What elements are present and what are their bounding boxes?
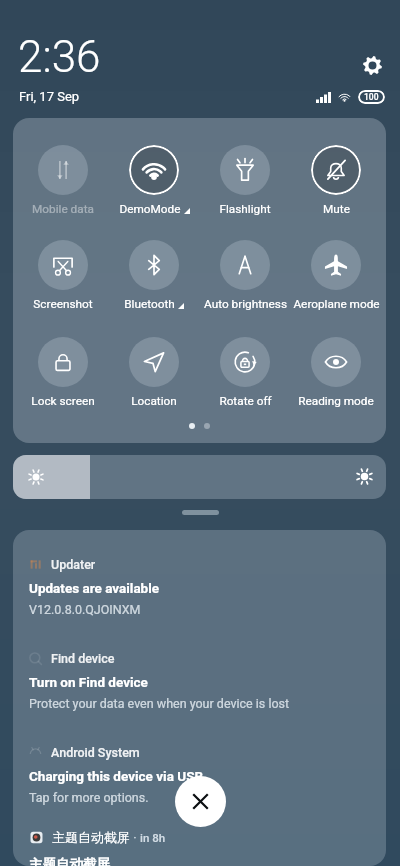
button[interactable]: Reading mode bbox=[291, 337, 381, 415]
staticText: Mobile data bbox=[32, 202, 94, 216]
staticText: Charging this device via USB bbox=[29, 768, 204, 784]
staticText: Updates are available bbox=[29, 580, 160, 596]
staticText: Aeroplane mode bbox=[293, 297, 380, 311]
staticText: Reading mode bbox=[298, 394, 374, 408]
button[interactable]: Brightness bbox=[13, 455, 386, 499]
button[interactable]: Mobile data bbox=[18, 145, 108, 223]
staticText: Auto brightness bbox=[204, 297, 287, 311]
button[interactable]: Updater bbox=[29, 556, 386, 636]
staticText: 100 bbox=[364, 92, 379, 102]
staticText: Mute bbox=[323, 202, 350, 216]
staticText: in 8h bbox=[140, 831, 166, 844]
staticText: 主题自动截屏 bbox=[52, 829, 130, 845]
staticText: · bbox=[130, 830, 140, 845]
button[interactable]: Bluetooth bbox=[109, 240, 199, 318]
staticText: Location bbox=[131, 394, 177, 408]
staticText: Screenshot bbox=[33, 297, 93, 311]
button[interactable]: Lock screen bbox=[18, 337, 108, 415]
button[interactable]: 主题自动截屏 bbox=[30, 829, 386, 845]
button[interactable]: Aeroplane mode bbox=[291, 240, 381, 318]
staticText: Rotate off bbox=[219, 394, 272, 408]
staticText: Fri, 17 Sep bbox=[19, 89, 80, 104]
button[interactable]: Find device bbox=[29, 650, 386, 730]
staticText: Android System bbox=[51, 745, 140, 760]
button[interactable]: Screenshot bbox=[18, 240, 108, 318]
staticText: 主题自动截屏 bbox=[29, 856, 110, 866]
staticText: Updater bbox=[51, 557, 96, 572]
button[interactable]: Location bbox=[109, 337, 199, 415]
staticText: Turn on Find device bbox=[29, 674, 148, 690]
button[interactable]: Android System bbox=[29, 744, 386, 824]
staticText: Protect your data even when your device … bbox=[29, 696, 290, 711]
button[interactable]: DemoMode bbox=[109, 145, 199, 223]
button[interactable]: Flashlight bbox=[200, 145, 290, 223]
staticText: Bluetooth bbox=[124, 297, 175, 311]
staticText: Lock screen bbox=[31, 394, 95, 408]
staticText: DemoMode bbox=[119, 202, 181, 216]
staticText: 2:36 bbox=[18, 31, 101, 83]
staticText: Flashlight bbox=[219, 202, 271, 216]
button[interactable]: Settings bbox=[358, 51, 386, 79]
staticText: V12.0.8.0.QJOINXM bbox=[29, 602, 141, 617]
button[interactable]: Auto brightness bbox=[200, 240, 290, 318]
button[interactable]: Rotate off bbox=[200, 337, 290, 415]
button[interactable]: Close notifications bbox=[175, 776, 226, 827]
button[interactable]: Mute bbox=[291, 145, 381, 223]
staticText: Find device bbox=[51, 651, 115, 666]
staticText: Tap for more options. bbox=[29, 790, 149, 805]
